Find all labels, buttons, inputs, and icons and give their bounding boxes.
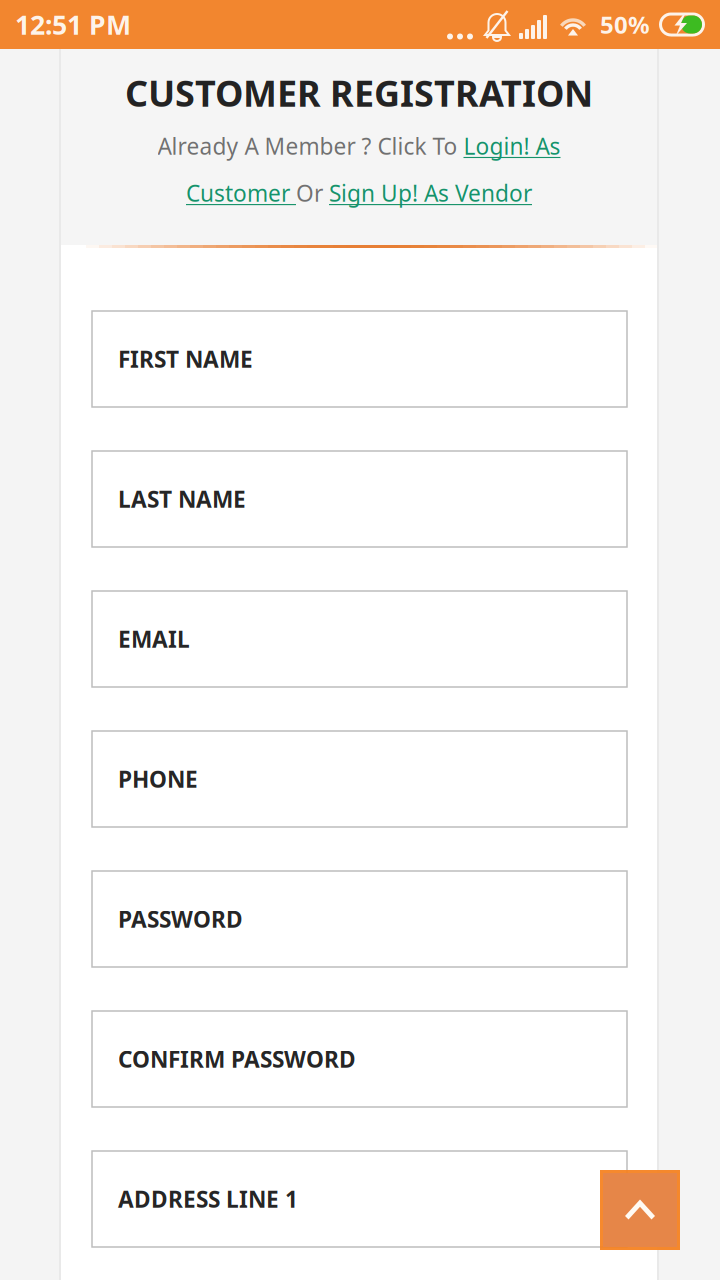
staticText: CONFIRM PASSWORD	[118, 1044, 356, 1074]
button[interactable]: Sign Up! As Vendor	[329, 178, 532, 208]
staticText: 12:51 PM	[15, 7, 131, 42]
button[interactable]: Customer	[186, 178, 296, 208]
button[interactable]: ADDRESS LINE 1	[92, 1151, 627, 1247]
staticText: Or	[296, 178, 329, 208]
button[interactable]: FIRST NAME	[92, 311, 627, 407]
staticText: Sign Up! As Vendor	[329, 178, 532, 208]
button[interactable]: EMAIL	[92, 591, 627, 687]
button[interactable]: PASSWORD	[92, 871, 627, 967]
staticText: 50%	[600, 9, 650, 40]
staticText: PHONE	[118, 764, 198, 794]
staticText: EMAIL	[118, 624, 190, 654]
staticText: FIRST NAME	[118, 344, 253, 374]
staticText: Already A Member ? Click To	[157, 131, 463, 161]
staticText: Customer	[186, 178, 296, 208]
button[interactable]: PHONE	[92, 731, 627, 827]
button[interactable]: Login! As	[463, 131, 560, 161]
staticText: LAST NAME	[118, 484, 246, 514]
staticText: PASSWORD	[118, 904, 243, 934]
button[interactable]: CONFIRM PASSWORD	[92, 1011, 627, 1107]
button[interactable]: LAST NAME	[92, 451, 627, 547]
staticText: Login! As	[463, 131, 560, 161]
staticText: CUSTOMER REGISTRATION	[125, 69, 593, 117]
button[interactable]: Scroll to top	[600, 1170, 680, 1250]
staticText: ADDRESS LINE 1	[118, 1184, 298, 1214]
